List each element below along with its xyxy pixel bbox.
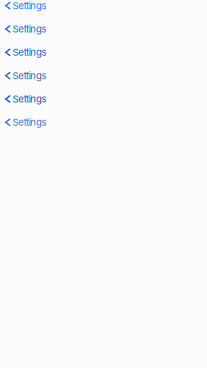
staticText: Settings [13, 47, 46, 58]
staticText: Settings [13, 23, 46, 35]
staticText: Settings [13, 117, 46, 128]
staticText: Settings [13, 0, 46, 11]
staticText: Settings [13, 70, 46, 81]
staticText: Settings [13, 93, 46, 105]
